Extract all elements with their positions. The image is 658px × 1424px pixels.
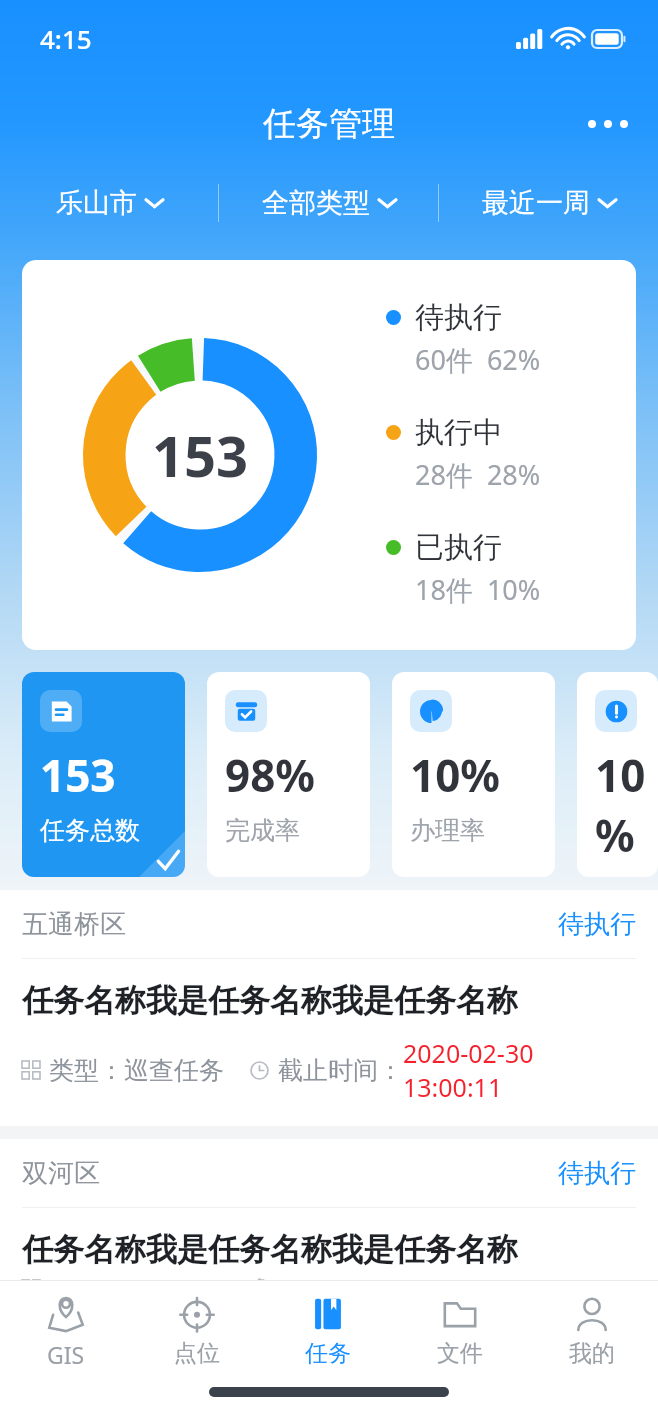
button[interactable]: 98% (207, 672, 370, 877)
staticText: 执行中 (415, 414, 502, 451)
button[interactable]: 双河区 (0, 1139, 658, 1280)
button[interactable]: 最近一周 (439, 172, 658, 234)
staticText: 我的 (569, 1339, 615, 1368)
staticText: 全部类型 (262, 186, 370, 220)
button[interactable]: 五通桥区 (0, 890, 658, 1126)
staticText: 2020-02-30 13:00:11 (403, 1036, 636, 1104)
button[interactable]: GIS (0, 1281, 131, 1387)
button[interactable]: 我的 (526, 1281, 658, 1387)
staticText: 最近一周 (482, 186, 590, 220)
staticText: 待执行 (415, 299, 502, 336)
staticText: 待执行 (558, 1157, 636, 1190)
button[interactable]: 153 (22, 260, 636, 650)
button[interactable]: 任务 (262, 1281, 394, 1387)
staticText: 五通桥区 (22, 908, 126, 941)
staticText: 任务名称我是任务名称我是任务名称 (22, 981, 518, 1020)
button[interactable]: More options (580, 96, 636, 152)
staticText: GIS (47, 1339, 85, 1370)
button[interactable]: 点位 (131, 1281, 262, 1387)
staticText: 待执行 (558, 908, 636, 941)
button[interactable]: 153 (22, 672, 185, 877)
staticText: 已执行 (415, 529, 502, 566)
staticText: 153 (40, 745, 116, 805)
button[interactable]: 10% (577, 672, 658, 877)
staticText: 截止时间： (278, 1055, 403, 1086)
staticText: 任务管理 (263, 103, 395, 145)
staticText: 类型：巡查任务 (49, 1055, 224, 1086)
staticText: 60件 62% (415, 341, 541, 378)
staticText: 10% (595, 745, 658, 865)
staticText: 98% (225, 745, 316, 805)
staticText: 任务名称我是任务名称我是任务名称 (22, 1230, 518, 1269)
staticText: 10% (410, 745, 501, 805)
staticText: 超时率 (595, 875, 658, 877)
staticText: 任务 (305, 1339, 351, 1368)
staticText: 办理率 (410, 815, 485, 846)
staticText: 双河区 (22, 1157, 100, 1190)
staticText: 完成率 (225, 815, 300, 846)
staticText: 乐山市 (56, 186, 137, 220)
staticText: 18件 10% (415, 571, 541, 608)
staticText: 153 (152, 417, 249, 493)
staticText: 任务总数 (40, 815, 140, 846)
staticText: 点位 (174, 1339, 220, 1368)
staticText: 4:15 (40, 21, 92, 56)
staticText: 28件 28% (415, 456, 541, 493)
button[interactable]: 全部类型 (219, 172, 438, 234)
button[interactable]: 10% (392, 672, 555, 877)
button[interactable]: 文件 (394, 1281, 526, 1387)
button[interactable]: 乐山市 (0, 172, 218, 234)
staticText: 文件 (437, 1339, 483, 1368)
